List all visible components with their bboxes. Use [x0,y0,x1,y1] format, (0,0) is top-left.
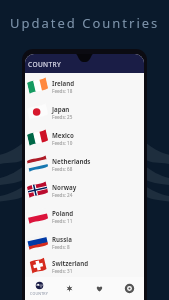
staticText: Feeds: 25 [52,114,73,120]
staticText: Feeds: 18 [52,88,73,94]
button[interactable]: Ireland [25,73,144,99]
button[interactable]: Explore [54,277,84,300]
button[interactable]: Netherlands [25,151,144,177]
button[interactable]: Settings [114,277,144,300]
staticText: COUNTRY [28,60,61,69]
button[interactable]: Mexico [25,125,144,151]
button[interactable]: Favourites [84,277,114,300]
staticText: Netherlands [52,157,91,165]
staticText: Feeds: 68 [52,166,73,172]
staticText: Feeds: 31 [52,268,73,274]
staticText: Russia [52,235,72,243]
button[interactable]: Russia [25,229,144,255]
button[interactable]: Japan [25,99,144,125]
staticText: Feeds: 24 [52,192,73,198]
staticText: Feeds: 10 [52,140,73,146]
staticText: Feeds: 11 [52,218,73,224]
staticText: Mexico [52,131,74,139]
staticText: Poland [52,209,74,217]
staticText: Switzerland [52,259,89,267]
button[interactable]: Poland [25,203,144,229]
staticText: Ireland [52,79,75,87]
button[interactable]: Norway [25,177,144,203]
staticText: COUNTRY [30,291,49,296]
staticText: Japan [52,105,70,113]
button[interactable]: COUNTRY [25,277,54,300]
button[interactable]: Switzerland [25,255,144,277]
staticText: Norway [52,183,77,191]
staticText: Feeds: 8 [52,244,70,250]
staticText: Updated Countries [10,14,160,32]
